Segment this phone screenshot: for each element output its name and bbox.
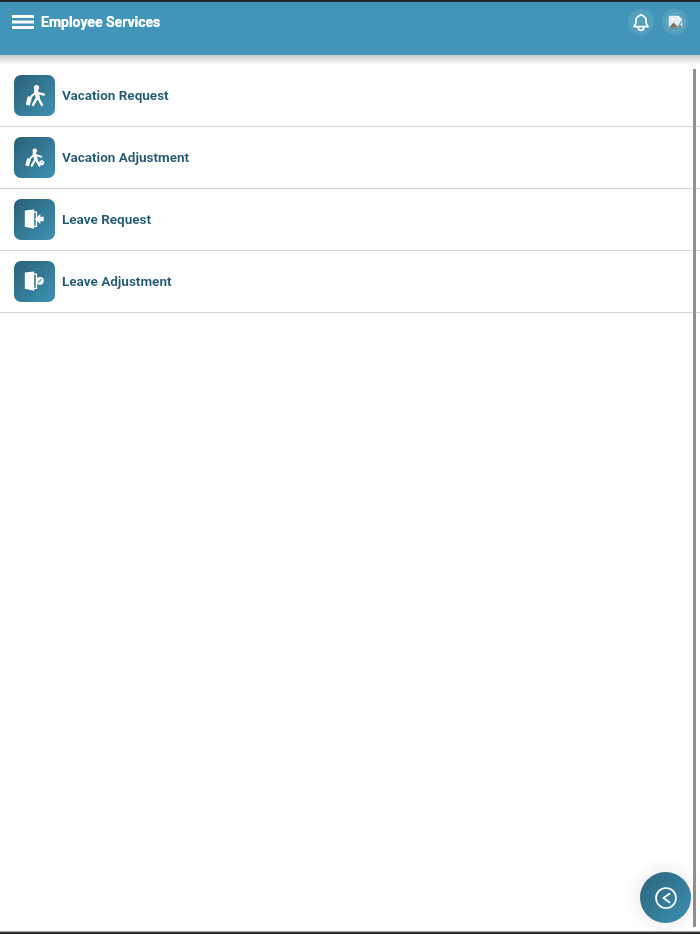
button[interactable]: Back <box>640 872 691 923</box>
button[interactable]: Profile <box>662 9 688 35</box>
staticText: Employee Services <box>41 14 161 30</box>
staticText: Vacation Adjustment <box>62 149 190 165</box>
button[interactable]: Vacation Request <box>0 65 700 126</box>
button[interactable]: Notifications <box>628 9 654 35</box>
staticText: Leave Request <box>62 211 152 227</box>
staticText: Leave Adjustment <box>62 273 172 289</box>
button[interactable]: Leave Adjustment <box>0 251 700 312</box>
button[interactable]: Vacation Adjustment <box>0 127 700 188</box>
staticText: Vacation Request <box>62 87 169 103</box>
button[interactable]: Open navigation menu <box>10 8 36 36</box>
button[interactable]: Leave Request <box>0 189 700 250</box>
